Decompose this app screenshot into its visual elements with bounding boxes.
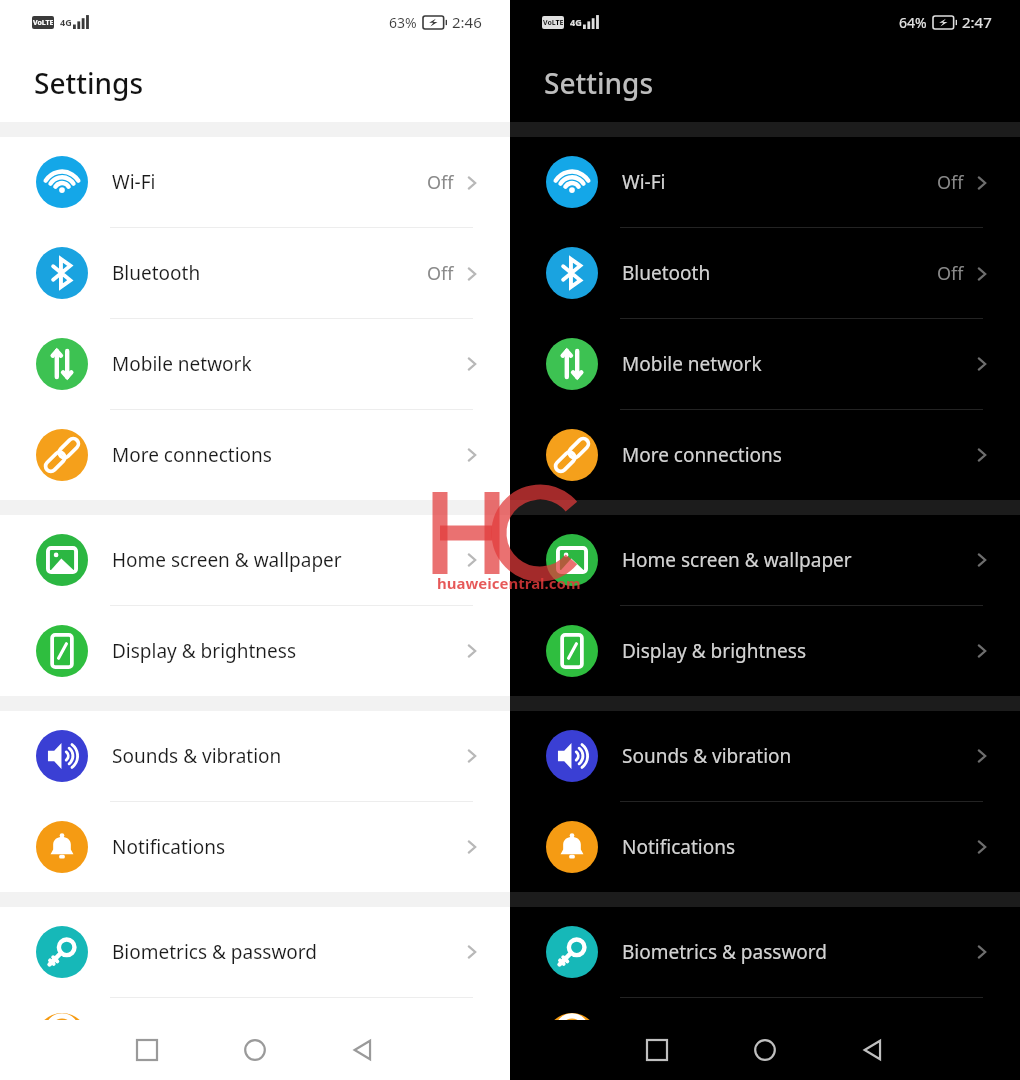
staticText: Sounds & vibration xyxy=(112,743,282,769)
staticText: Display & brightness xyxy=(112,638,296,664)
button[interactable]: Apps xyxy=(510,998,1020,1080)
staticText: Bluetooth xyxy=(112,260,201,286)
staticText: Bluetooth xyxy=(622,260,711,286)
button[interactable]: Recent apps xyxy=(622,1020,692,1080)
staticText: Sounds & vibration xyxy=(622,743,792,769)
staticText: Apps xyxy=(622,1026,667,1052)
staticText: Notifications xyxy=(112,834,226,860)
button[interactable]: Biometrics & password xyxy=(0,907,510,997)
button[interactable]: Home xyxy=(220,1020,290,1080)
button[interactable]: Sounds & vibration xyxy=(510,711,1020,801)
staticText: 2:47 xyxy=(962,12,992,32)
staticText: Apps xyxy=(112,1026,157,1052)
button[interactable]: Bluetooth xyxy=(510,228,1020,318)
button[interactable]: Home xyxy=(730,1020,800,1080)
button[interactable]: Recent apps xyxy=(112,1020,182,1080)
staticText: Mobile network xyxy=(112,351,252,377)
staticText: Off xyxy=(427,170,454,195)
staticText: 64% xyxy=(899,13,927,32)
staticText: Notifications xyxy=(622,834,736,860)
staticText: 2:46 xyxy=(452,12,482,32)
staticText: Wi-Fi xyxy=(622,169,666,195)
staticText: 63% xyxy=(389,13,417,32)
button[interactable]: Home screen & wallpaper xyxy=(510,515,1020,605)
staticText: Wi-Fi xyxy=(112,169,156,195)
button[interactable]: Display & brightness xyxy=(0,606,510,696)
staticText: Off xyxy=(937,261,964,286)
staticText: VoLTE xyxy=(543,18,564,28)
button[interactable]: Display & brightness xyxy=(510,606,1020,696)
staticText: 4G xyxy=(570,16,582,28)
staticText: huaweicentral.com xyxy=(437,573,581,593)
button[interactable]: Home screen & wallpaper xyxy=(0,515,510,605)
button[interactable]: Back xyxy=(328,1020,398,1080)
button[interactable]: Mobile network xyxy=(510,319,1020,409)
button[interactable]: More connections xyxy=(0,410,510,500)
staticText: Settings xyxy=(34,64,144,102)
staticText: More connections xyxy=(622,442,782,468)
button[interactable]: Notifications xyxy=(0,802,510,892)
button[interactable]: Apps xyxy=(0,998,510,1080)
button[interactable]: Sounds & vibration xyxy=(0,711,510,801)
staticText: Biometrics & password xyxy=(622,939,827,965)
button[interactable]: Notifications xyxy=(510,802,1020,892)
button[interactable]: More connections xyxy=(510,410,1020,500)
staticText: Settings xyxy=(544,64,654,102)
button[interactable]: Bluetooth xyxy=(0,228,510,318)
staticText: More connections xyxy=(112,442,272,468)
staticText: Home screen & wallpaper xyxy=(112,547,342,573)
staticText: Off xyxy=(937,170,964,195)
button[interactable]: Wi-Fi xyxy=(510,137,1020,227)
staticText: Off xyxy=(427,261,454,286)
button[interactable]: Wi-Fi xyxy=(0,137,510,227)
staticText: Display & brightness xyxy=(622,638,806,664)
button[interactable]: Mobile network xyxy=(0,319,510,409)
staticText: Home screen & wallpaper xyxy=(622,547,852,573)
button[interactable]: Back xyxy=(838,1020,908,1080)
staticText: VoLTE xyxy=(33,18,54,28)
staticText: Biometrics & password xyxy=(112,939,317,965)
staticText: 4G xyxy=(60,16,72,28)
staticText: Mobile network xyxy=(622,351,762,377)
button[interactable]: Biometrics & password xyxy=(510,907,1020,997)
